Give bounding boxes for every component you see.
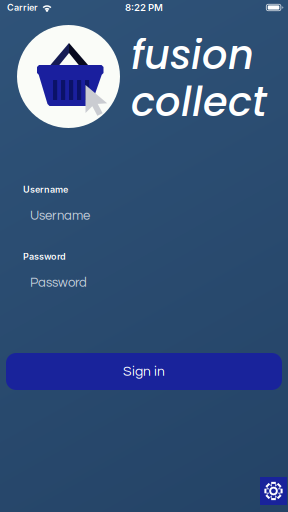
staticText: Password	[23, 251, 66, 262]
staticText: fusion	[131, 27, 254, 83]
staticText: Sign in	[123, 364, 165, 379]
button[interactable]: Settings	[260, 477, 287, 505]
staticText: Username	[23, 184, 68, 195]
staticText: Carrier	[7, 2, 38, 13]
staticText: 8:22 PM	[125, 2, 163, 13]
button[interactable]: Sign in	[6, 353, 282, 390]
staticText: Username	[30, 209, 90, 222]
staticText: collect	[131, 74, 267, 130]
staticText: Password	[30, 276, 87, 289]
